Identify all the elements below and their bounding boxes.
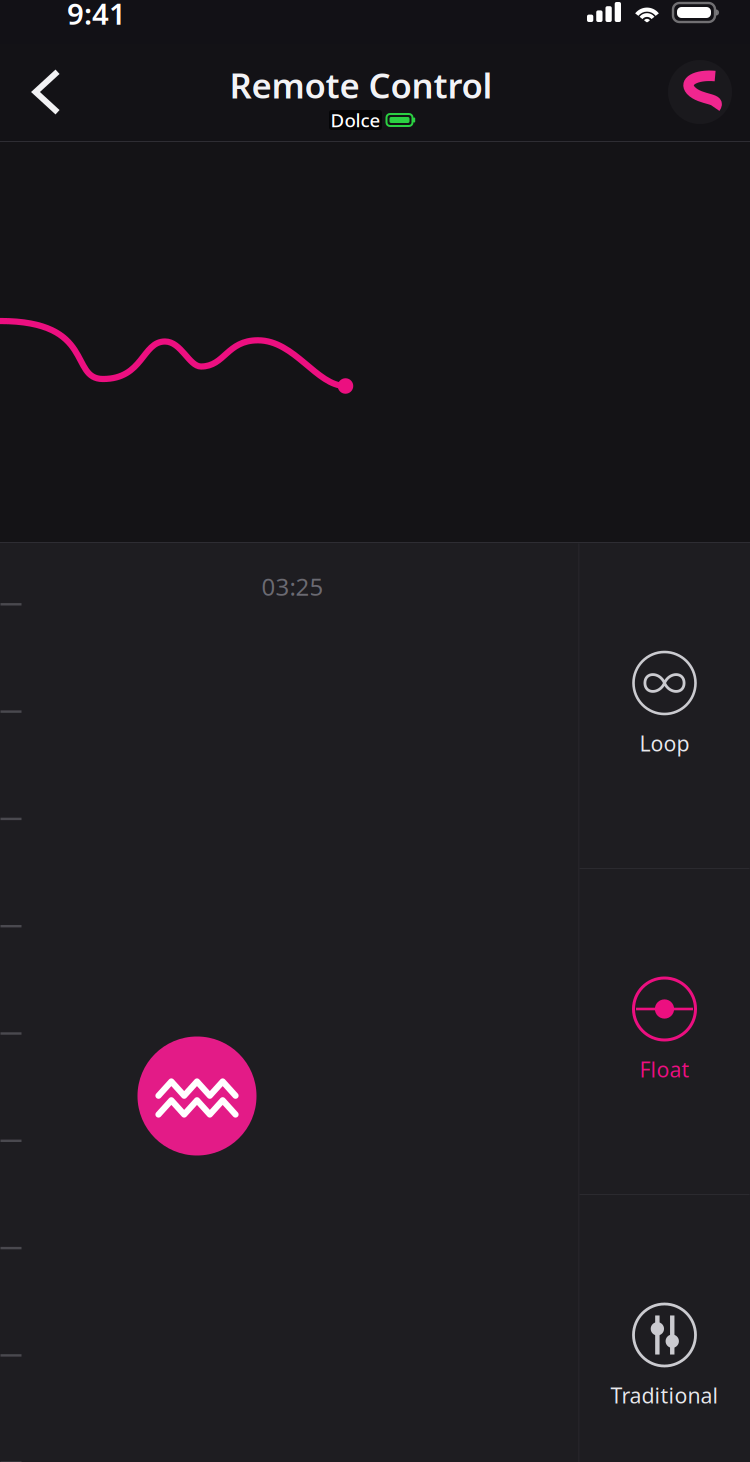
button[interactable]: Loop mode (579, 543, 749, 869)
button[interactable]: Vibration pattern (137, 1036, 256, 1155)
staticText: Remote Control (229, 62, 492, 108)
staticText: Loop (639, 729, 689, 757)
staticText: Dolce (330, 108, 380, 132)
staticText: Float (639, 1055, 689, 1083)
button[interactable]: Traditional mode (579, 1195, 749, 1462)
staticText: 9:41 (67, 0, 126, 33)
staticText: 03:25 (261, 570, 323, 602)
button[interactable]: Float mode (579, 869, 749, 1195)
button[interactable]: Device (652, 44, 750, 140)
staticText: Traditional (610, 1381, 718, 1409)
button[interactable]: Back (0, 44, 91, 140)
